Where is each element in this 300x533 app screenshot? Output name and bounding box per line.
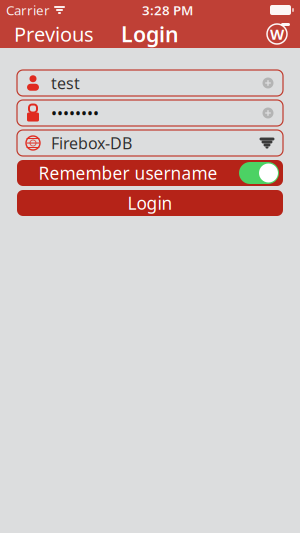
staticText: Carrier bbox=[6, 1, 50, 19]
button[interactable]: Remember username bbox=[17, 160, 283, 186]
staticText: Previous bbox=[14, 21, 94, 47]
button[interactable]: WatchGuard bbox=[258, 19, 296, 49]
staticText: Firebox-DB bbox=[51, 132, 132, 154]
button[interactable]: Clear text bbox=[257, 102, 279, 124]
staticText: 3:28 PM bbox=[142, 1, 193, 19]
button[interactable]: Firebox-DB bbox=[17, 130, 283, 156]
staticText: •••••••• bbox=[51, 102, 99, 124]
staticText: Login bbox=[121, 20, 179, 48]
button[interactable]: •••••••• bbox=[17, 100, 283, 126]
button[interactable]: Login bbox=[17, 190, 283, 216]
staticText: W bbox=[270, 24, 284, 44]
staticText: test bbox=[51, 72, 80, 94]
button[interactable]: Clear text bbox=[257, 72, 279, 94]
staticText: Login bbox=[127, 191, 172, 214]
button[interactable]: test bbox=[17, 70, 283, 96]
staticText: Remember username bbox=[38, 161, 217, 184]
button[interactable]: Previous bbox=[4, 15, 104, 53]
